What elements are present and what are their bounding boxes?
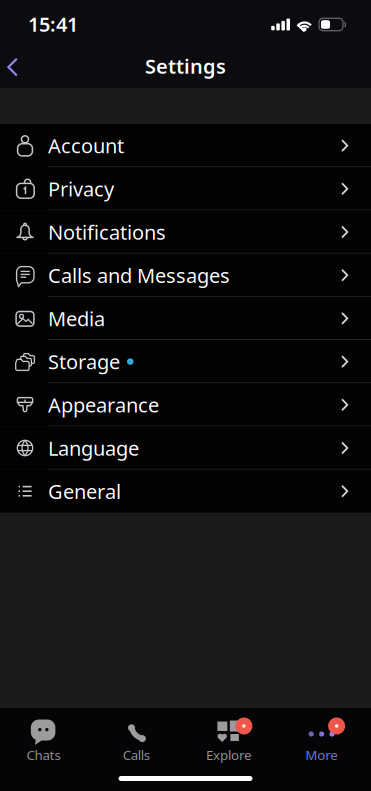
button[interactable]: Appearance [0,383,371,426]
staticText: Calls [123,746,150,764]
button[interactable]: More [275,719,368,764]
button[interactable]: Notifications [0,210,371,254]
staticText: Media [48,305,105,332]
staticText: General [48,478,121,504]
button[interactable]: Calls and Messages [0,254,371,297]
staticText: Appearance [48,391,159,418]
staticText: 15:41 [28,11,78,37]
button[interactable]: Back [0,49,18,84]
staticText: Explore [206,746,252,764]
staticText: Account [48,132,124,159]
staticText: Privacy [48,175,114,202]
staticText: Calls and Messages [48,262,230,288]
staticText: Settings [145,53,226,79]
button[interactable]: Explore [182,719,275,764]
button[interactable]: Media [0,297,371,340]
staticText: Language [48,435,139,461]
button[interactable]: Privacy [0,167,371,210]
button[interactable]: General [0,470,371,513]
button[interactable]: Account [0,124,371,167]
staticText: Storage [48,348,120,375]
button[interactable]: Language [0,426,371,470]
button[interactable]: Storage [0,340,371,383]
staticText: More [305,746,338,764]
button[interactable]: Chats [0,719,90,764]
staticText: Chats [26,746,60,764]
staticText: Notifications [48,219,166,245]
button[interactable]: Calls [90,719,183,764]
